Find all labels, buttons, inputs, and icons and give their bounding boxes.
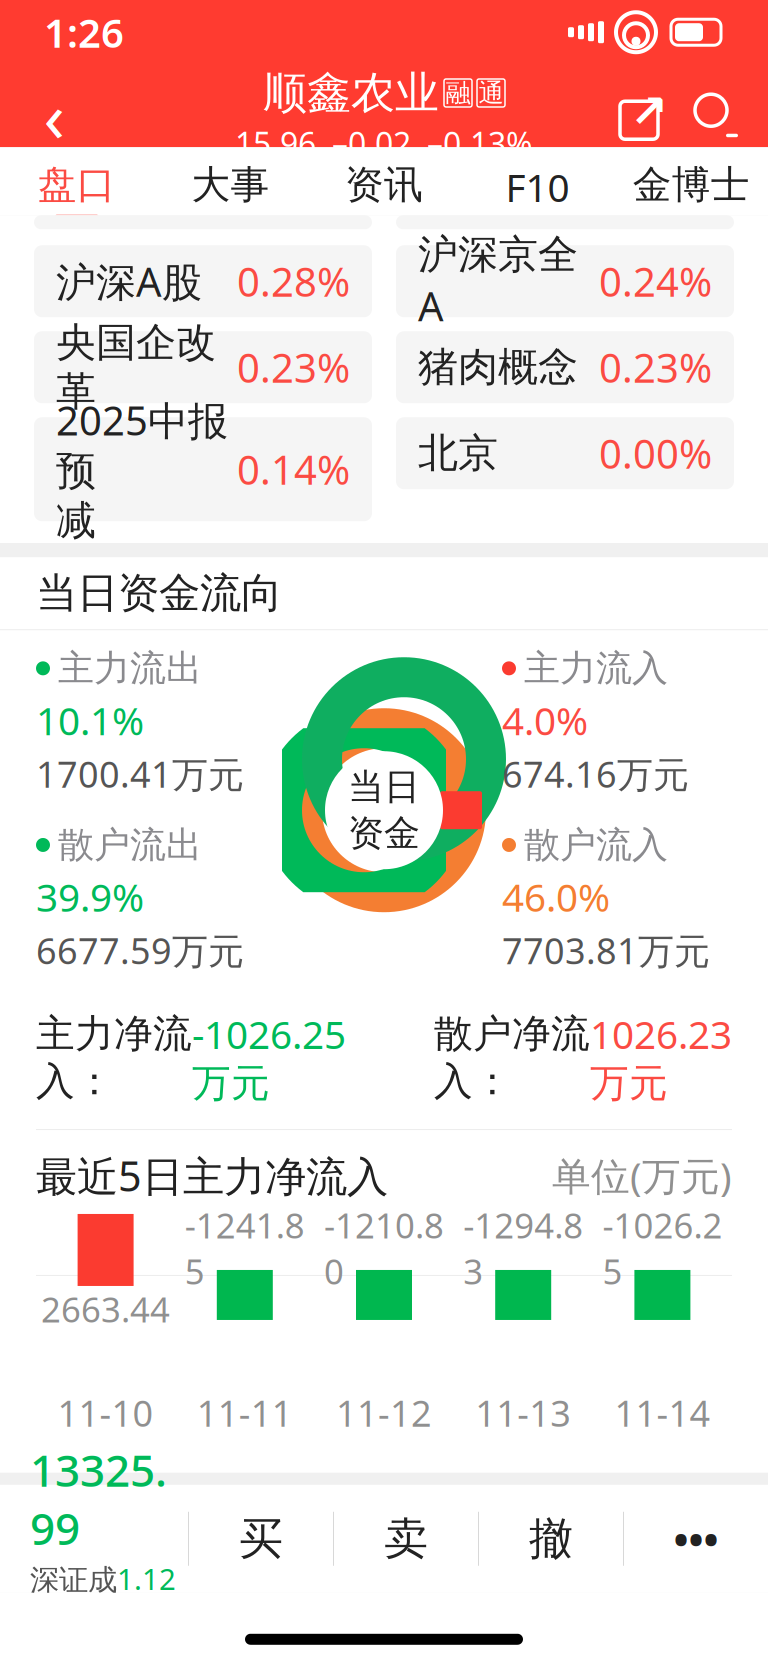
- staticText: 10.1%: [36, 694, 144, 746]
- staticText: 沪深A股: [56, 255, 202, 308]
- button[interactable]: 沪深A股: [34, 245, 372, 317]
- staticText: 2663.44: [41, 1286, 170, 1332]
- staticText: 顺鑫农业: [263, 66, 439, 120]
- button[interactable]: 买: [189, 1485, 333, 1593]
- button[interactable]: Search: [680, 79, 752, 151]
- staticText: 金博士: [633, 161, 750, 209]
- staticText: 11-11: [197, 1389, 293, 1437]
- staticText: 散户净流入：: [434, 1010, 590, 1105]
- staticText: 1026.23万元: [590, 1008, 732, 1107]
- staticText: 2025中报预 减: [56, 393, 228, 545]
- button[interactable]: 2025中报预 减: [34, 417, 372, 521]
- staticText: 卖: [384, 1512, 428, 1566]
- staticText: 当日资金流向: [36, 568, 282, 619]
- staticText: -1026.25: [602, 1202, 722, 1294]
- button[interactable]: 猪肉概念: [396, 331, 734, 403]
- staticText: F10: [506, 161, 570, 212]
- staticText: 0.23%: [599, 341, 712, 394]
- staticText: 资讯: [345, 161, 423, 209]
- button[interactable]: F10: [461, 147, 614, 215]
- staticText: -1026.25万元: [192, 1008, 346, 1107]
- staticText: 单位(万元): [552, 1150, 732, 1201]
- staticText: 11-12: [336, 1389, 432, 1437]
- staticText: 11-14: [614, 1389, 710, 1437]
- staticText: 深证成指: [30, 1562, 117, 1634]
- staticText: 1:26: [44, 6, 124, 59]
- button[interactable]: 盘口: [0, 147, 154, 215]
- staticText: 4.0%: [502, 694, 588, 746]
- staticText: 0.14%: [237, 443, 350, 496]
- staticText: ‹: [43, 69, 64, 161]
- button[interactable]: More: [624, 1485, 768, 1593]
- staticText: -1294.83: [463, 1202, 583, 1294]
- staticText: 0.28%: [237, 255, 350, 308]
- button[interactable]: 金博士: [614, 147, 768, 215]
- button[interactable]: 大事: [154, 147, 307, 215]
- staticText: 猪肉概念: [418, 343, 578, 392]
- staticText: 13325.99: [30, 1440, 167, 1557]
- button[interactable]: Share: [608, 79, 680, 151]
- staticText: 6677.59万元: [36, 926, 244, 974]
- staticText: 主力流出: [58, 646, 202, 690]
- staticText: 7703.81万元: [502, 926, 710, 974]
- button[interactable]: 卖: [334, 1485, 478, 1593]
- staticText: 散户流入: [524, 823, 668, 867]
- staticText: 北京: [418, 429, 498, 478]
- staticText: 买: [239, 1512, 283, 1566]
- staticText: 主力净流入：: [36, 1010, 192, 1105]
- staticText: •••: [673, 1512, 718, 1565]
- staticText: 39.9%: [36, 871, 144, 922]
- staticText: 当日: [348, 765, 420, 809]
- staticText: 资金: [348, 811, 420, 855]
- staticText: 11-13: [475, 1389, 571, 1437]
- button[interactable]: Back: [16, 77, 92, 153]
- staticText: 46.0%: [502, 871, 610, 922]
- button[interactable]: 资讯: [307, 147, 461, 215]
- staticText: 散户流出: [58, 823, 202, 867]
- staticText: 撤: [529, 1512, 573, 1566]
- button[interactable]: 央国企改革: [34, 331, 372, 403]
- staticText: -1210.80: [324, 1202, 444, 1294]
- staticText: 融: [445, 77, 470, 108]
- staticText: 盘口: [38, 161, 116, 209]
- staticText: 通: [478, 77, 503, 108]
- staticText: 1.12%: [117, 1559, 176, 1637]
- staticText: 主力流入: [524, 646, 668, 690]
- button[interactable]: 沪深京全A: [396, 245, 734, 317]
- staticText: 0.23%: [237, 341, 350, 394]
- staticText: 0.00%: [599, 427, 712, 480]
- staticText: 大事: [191, 161, 269, 209]
- staticText: 央国企改革: [56, 318, 216, 416]
- staticText: ↗: [630, 85, 668, 137]
- button[interactable]: 北京: [396, 417, 734, 489]
- staticText: 11-10: [58, 1389, 154, 1437]
- staticText: 1700.41万元: [36, 750, 244, 798]
- staticText: 15.96 –0.02 –0.13%: [235, 122, 533, 164]
- staticText: 0.24%: [599, 255, 712, 308]
- staticText: 最近5日主力净流入: [36, 1148, 388, 1203]
- staticText: 沪深京全A: [418, 230, 578, 332]
- staticText: -1241.85: [185, 1202, 305, 1294]
- button[interactable]: 撤: [479, 1485, 623, 1593]
- staticText: 674.16万元: [502, 750, 689, 798]
